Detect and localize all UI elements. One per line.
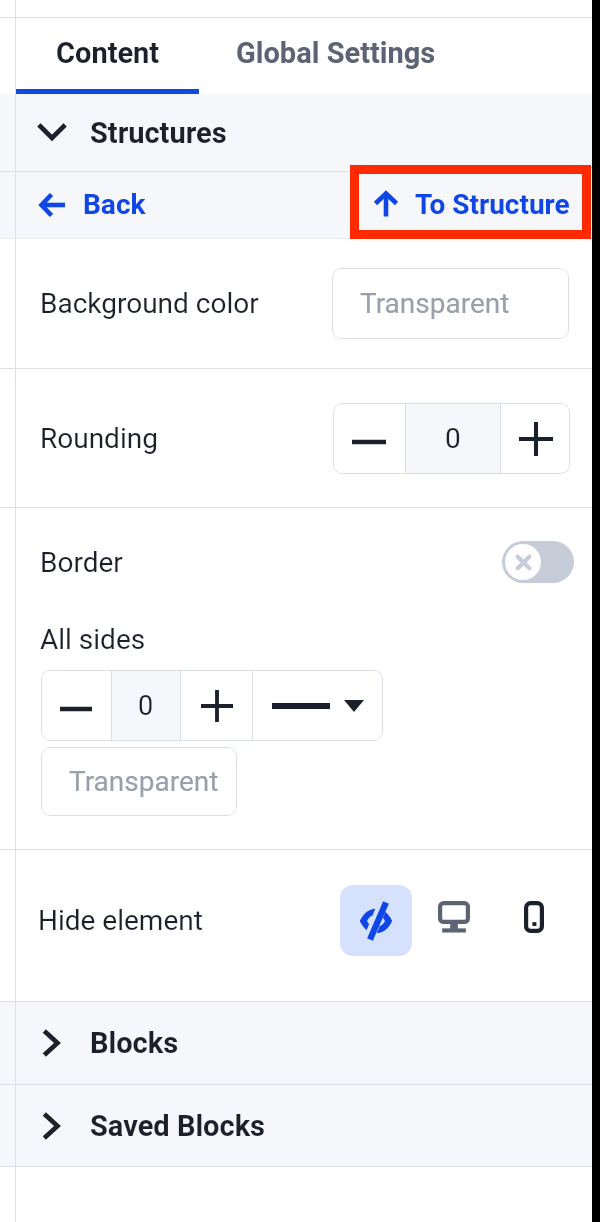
button[interactable]: Line style [253, 670, 383, 741]
staticText: Structures [90, 116, 227, 150]
staticText: Blocks [90, 1026, 179, 1060]
button[interactable]: Global Settings [199, 18, 473, 94]
button[interactable]: Border toggle [502, 541, 574, 583]
staticText: Border [40, 546, 123, 579]
button[interactable]: Increase [501, 403, 570, 474]
button[interactable]: 0 [112, 670, 180, 741]
other: Increase [519, 422, 553, 456]
button[interactable]: Increase [181, 670, 252, 741]
button[interactable]: Saved Blocks [0, 1085, 600, 1166]
staticText: Global Settings [236, 36, 436, 70]
staticText: Hide element [38, 904, 203, 937]
button[interactable]: Hidden on desktop [432, 884, 476, 956]
staticText: Transparent [69, 765, 219, 798]
button[interactable]: 0 [406, 403, 500, 474]
staticText: Transparent [360, 287, 510, 320]
staticText: Content [56, 36, 160, 70]
button[interactable]: Decrease [41, 670, 111, 741]
staticText: Back [83, 188, 146, 221]
button[interactable]: Transparent [332, 268, 569, 339]
staticText: Saved Blocks [90, 1109, 266, 1143]
other: Decrease [60, 693, 92, 725]
button[interactable]: Blocks [0, 1002, 600, 1084]
button[interactable]: Structures [0, 94, 600, 171]
button[interactable]: Hidden on mobile [518, 884, 550, 956]
other: Increase [201, 690, 233, 722]
button[interactable]: Transparent [41, 747, 237, 816]
other: Back [40, 192, 66, 218]
button[interactable]: Hidden everywhere [340, 885, 412, 956]
staticText: 0 [138, 690, 154, 722]
other: Decrease [352, 425, 386, 459]
staticText: All sides [40, 623, 146, 656]
staticText: To Structure [415, 188, 570, 221]
staticText: 0 [445, 422, 461, 455]
staticText: Background color [40, 287, 259, 320]
other: To Structure [373, 192, 399, 218]
button[interactable]: Back [40, 172, 146, 238]
staticText: Rounding [40, 422, 158, 455]
button[interactable]: To Structure [373, 172, 570, 238]
button[interactable]: Decrease [333, 403, 405, 474]
button[interactable]: Content [16, 18, 199, 94]
